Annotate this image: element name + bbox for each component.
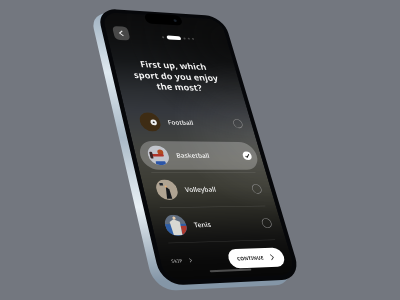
button[interactable] xyxy=(0,0,400,300)
